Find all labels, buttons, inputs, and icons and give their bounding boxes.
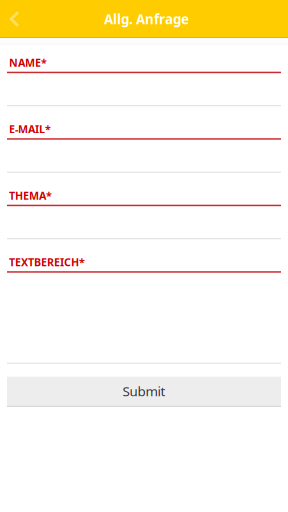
button[interactable]: THEMA*	[7, 206, 281, 239]
button[interactable]: Back	[0, 0, 32, 37]
staticText: TEXTBEREICH*	[9, 255, 85, 269]
button[interactable]: E-MAIL*	[7, 140, 281, 173]
staticText: Submit	[122, 382, 165, 400]
staticText: THEMA*	[9, 189, 52, 203]
staticText: NAME*	[9, 56, 47, 70]
staticText: Allg. Anfrage	[104, 10, 189, 28]
button[interactable]: Submit	[7, 377, 281, 407]
staticText: E-MAIL*	[9, 122, 51, 136]
button[interactable]: NAME*	[7, 73, 281, 106]
